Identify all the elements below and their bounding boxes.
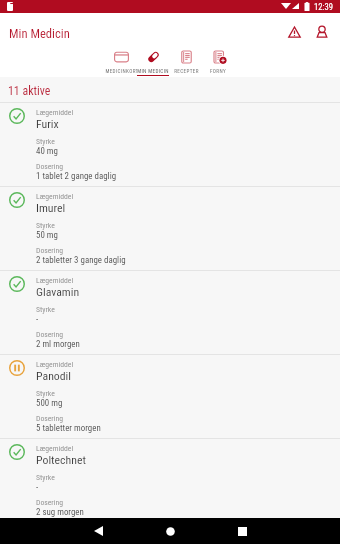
button[interactable]: Lægemiddel xyxy=(0,439,340,518)
staticText: Furix xyxy=(36,117,59,131)
staticText: 1 tablet 2 gange daglig xyxy=(36,171,117,181)
button[interactable]: Back xyxy=(85,518,111,544)
staticText: Styrke xyxy=(36,473,55,482)
staticText: Dosering xyxy=(36,162,63,171)
staticText: Lægemiddel xyxy=(36,360,74,369)
staticText: - xyxy=(36,482,39,492)
staticText: 2 sug morgen xyxy=(36,507,84,517)
staticText: Styrke xyxy=(36,137,55,146)
button[interactable]: Recents xyxy=(229,518,255,544)
button[interactable]: Lægemiddel xyxy=(0,271,340,354)
staticText: Dosering xyxy=(36,498,63,507)
staticText: Styrke xyxy=(36,305,55,314)
staticText: Dosering xyxy=(36,246,63,255)
button[interactable]: Lægemiddel xyxy=(0,187,340,270)
staticText: Glavamin xyxy=(36,285,80,299)
staticText: Lægemiddel xyxy=(36,276,74,285)
staticText: 50 mg xyxy=(36,230,58,240)
staticText: - xyxy=(36,314,39,324)
staticText: 2 ml morgen xyxy=(36,339,80,349)
staticText: MIN MEDICIN xyxy=(137,68,169,74)
staticText: 12:39 xyxy=(314,2,333,12)
staticText: 40 mg xyxy=(36,146,58,156)
button[interactable]: Lægemiddel xyxy=(0,355,340,438)
staticText: 11 aktive xyxy=(8,84,51,98)
staticText: Dosering xyxy=(36,330,63,339)
staticText: Panodil xyxy=(36,369,72,383)
button[interactable]: Advarsler xyxy=(282,19,307,44)
button[interactable]: Home xyxy=(157,518,183,544)
staticText: Dosering xyxy=(36,414,63,423)
button[interactable]: Lægemiddel xyxy=(0,103,340,186)
staticText: Styrke xyxy=(36,389,55,398)
staticText: Min Medicin xyxy=(9,26,70,41)
staticText: Lægemiddel xyxy=(36,192,74,201)
staticText: Poltechnet xyxy=(36,453,86,467)
staticText: 2 tabletter 3 gange daglig xyxy=(36,255,126,265)
staticText: 500 mg xyxy=(36,398,63,408)
staticText: 5 tabletter morgen xyxy=(36,423,101,433)
staticText: Imurel xyxy=(36,201,66,215)
staticText: Lægemiddel xyxy=(36,108,74,117)
staticText: Lægemiddel xyxy=(36,444,74,453)
staticText: FORNY xyxy=(210,68,226,74)
button[interactable]: Profil xyxy=(309,19,334,44)
staticText: RECEPTER xyxy=(174,68,199,74)
button[interactable]: FORNY xyxy=(202,44,234,77)
button[interactable]: MEDICINKORT xyxy=(105,44,137,77)
button[interactable]: RECEPTER xyxy=(170,44,202,77)
button[interactable]: MIN MEDICIN xyxy=(137,44,169,77)
staticText: Styrke xyxy=(36,221,55,230)
staticText: MEDICINKORT xyxy=(105,68,137,74)
